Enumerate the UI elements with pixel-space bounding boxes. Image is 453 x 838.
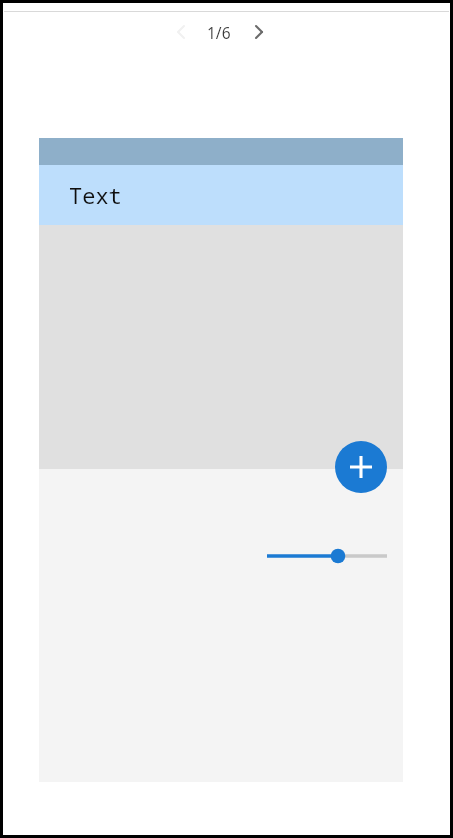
button[interactable]: Add bbox=[335, 441, 387, 493]
button[interactable]: Slider bbox=[259, 542, 395, 570]
staticText: 1/6 bbox=[207, 22, 231, 43]
button[interactable]: Text bbox=[39, 165, 403, 225]
button[interactable]: Next page bbox=[241, 14, 277, 50]
staticText: Text bbox=[69, 180, 122, 210]
